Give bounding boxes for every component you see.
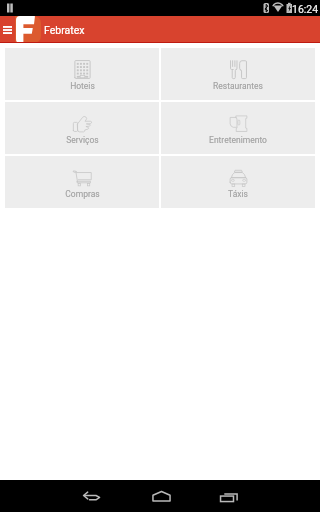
button[interactable]: Táxis <box>161 156 315 208</box>
staticText: Táxis <box>228 189 248 199</box>
button[interactable]: Menu <box>0 16 15 43</box>
staticText: Hoteis <box>70 81 95 91</box>
staticText: Compras <box>65 189 100 199</box>
button[interactable]: Hoteis <box>5 48 159 100</box>
button[interactable]: Recent apps <box>199 480 259 512</box>
staticText: 16:24 <box>292 3 319 15</box>
button[interactable]: Back <box>62 480 122 512</box>
button[interactable]: Serviços <box>5 102 159 154</box>
button[interactable]: Entretenimento <box>161 102 315 154</box>
button[interactable]: Home <box>131 480 191 512</box>
staticText: Febratex <box>44 24 85 36</box>
button[interactable]: Compras <box>5 156 159 208</box>
staticText: Restaurantes <box>213 81 263 91</box>
button[interactable]: Restaurantes <box>161 48 315 100</box>
staticText: Serviços <box>66 135 99 145</box>
staticText: Entretenimento <box>209 135 267 145</box>
